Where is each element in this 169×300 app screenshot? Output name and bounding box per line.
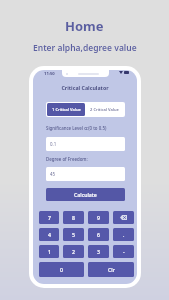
- staticText: 2 Critical Value: [90, 107, 119, 113]
- button[interactable]: 0.1: [46, 137, 125, 151]
- staticText: 4: [48, 231, 51, 238]
- button[interactable]: 4: [39, 228, 59, 241]
- staticText: 1: [48, 248, 51, 255]
- staticText: 1 Critical Value: [52, 107, 81, 113]
- button[interactable]: 7: [39, 211, 59, 224]
- button[interactable]: Clr: [88, 262, 134, 277]
- staticText: 7: [48, 214, 51, 221]
- staticText: .: [123, 231, 125, 238]
- staticText: 9: [97, 214, 100, 221]
- button[interactable]: 9: [88, 211, 109, 224]
- button[interactable]: 6: [88, 228, 109, 241]
- button[interactable]: -: [113, 245, 134, 258]
- staticText: 2: [72, 248, 75, 255]
- button[interactable]: 1 Critical Value: [47, 103, 85, 116]
- button[interactable]: 2 Critical Value: [85, 103, 124, 116]
- button[interactable]: Backspace: [113, 211, 134, 224]
- staticText: 6: [97, 231, 100, 238]
- staticText: Degree of Freedom:: [46, 156, 88, 162]
- staticText: 8: [72, 214, 75, 221]
- button[interactable]: 0: [39, 262, 84, 277]
- staticText: Home: [65, 17, 104, 35]
- staticText: 11:50: [44, 71, 55, 77]
- button[interactable]: 1: [39, 245, 59, 258]
- staticText: 5: [72, 231, 75, 238]
- staticText: Significance Level α:(0 to 0.5): [46, 125, 107, 131]
- staticText: -: [123, 248, 125, 255]
- button[interactable]: .: [113, 228, 134, 241]
- staticText: 3: [97, 248, 100, 255]
- button[interactable]: 8: [63, 211, 84, 224]
- button[interactable]: 2: [63, 245, 84, 258]
- staticText: Calculate: [74, 191, 97, 198]
- staticText: 0.1: [50, 141, 57, 147]
- button[interactable]: 45: [46, 167, 125, 181]
- staticText: Critical Calculator: [33, 84, 137, 91]
- button[interactable]: Calculate: [46, 188, 125, 201]
- staticText: 0: [60, 266, 63, 273]
- button[interactable]: 5: [63, 228, 84, 241]
- staticText: Enter alpha,degree value: [33, 42, 137, 54]
- staticText: Clr: [108, 266, 115, 273]
- staticText: 45: [50, 171, 56, 177]
- button[interactable]: 3: [88, 245, 109, 258]
